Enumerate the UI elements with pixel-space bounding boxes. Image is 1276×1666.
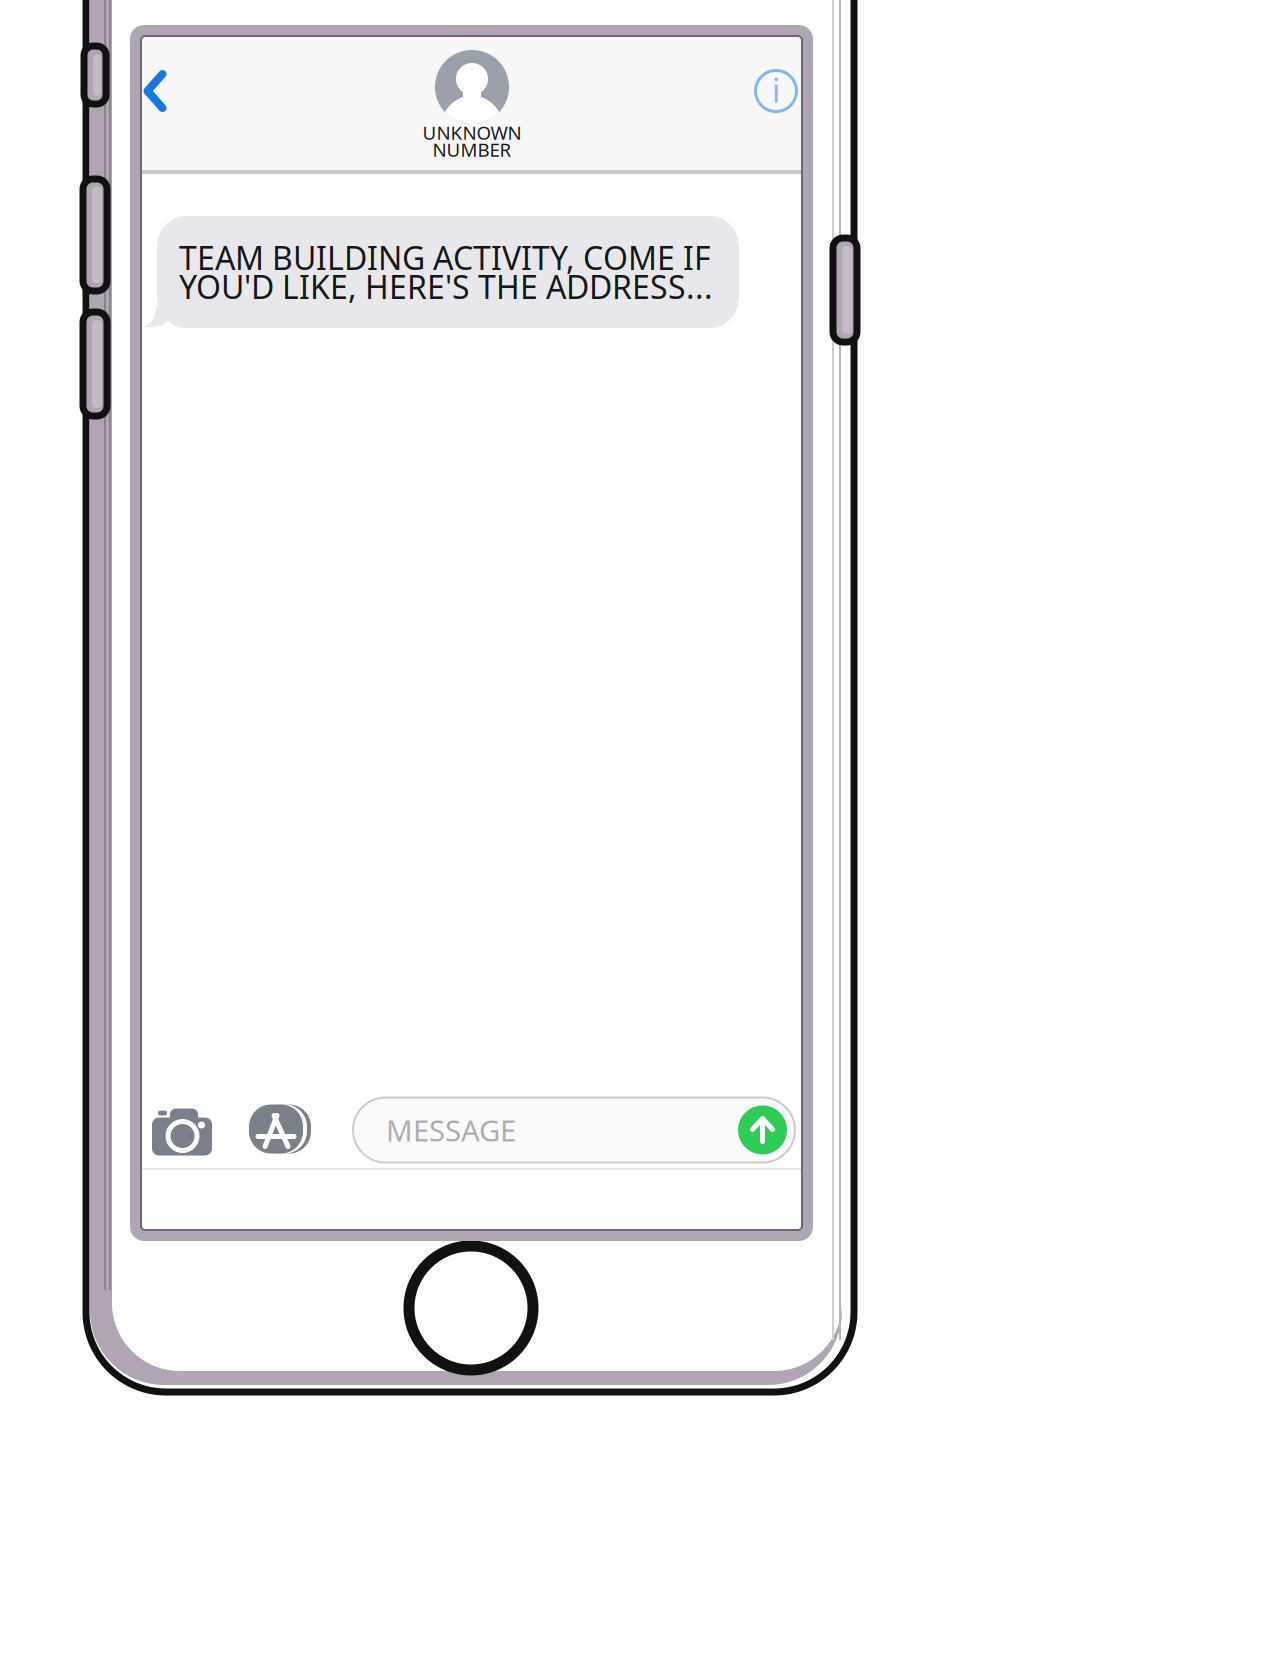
- button[interactable]: Camera: [148, 1096, 216, 1158]
- button[interactable]: Back: [122, 52, 188, 130]
- button[interactable]: UNKNOWN: [322, 50, 622, 170]
- button[interactable]: Details: [743, 52, 809, 130]
- staticText: UNKNOWN: [422, 120, 521, 145]
- button[interactable]: MESSAGE: [353, 1097, 795, 1162]
- staticText: YOU'D LIKE, HERE'S THE ADDRESS...: [179, 265, 713, 308]
- button[interactable]: Apps: [245, 1098, 315, 1160]
- staticText: NUMBER: [432, 137, 511, 162]
- staticText: TEAM BUILDING ACTIVITY, COME IF: [179, 236, 711, 279]
- staticText: MESSAGE: [386, 1110, 516, 1149]
- button[interactable]: Send: [738, 1105, 787, 1154]
- staticText: i: [772, 69, 780, 111]
